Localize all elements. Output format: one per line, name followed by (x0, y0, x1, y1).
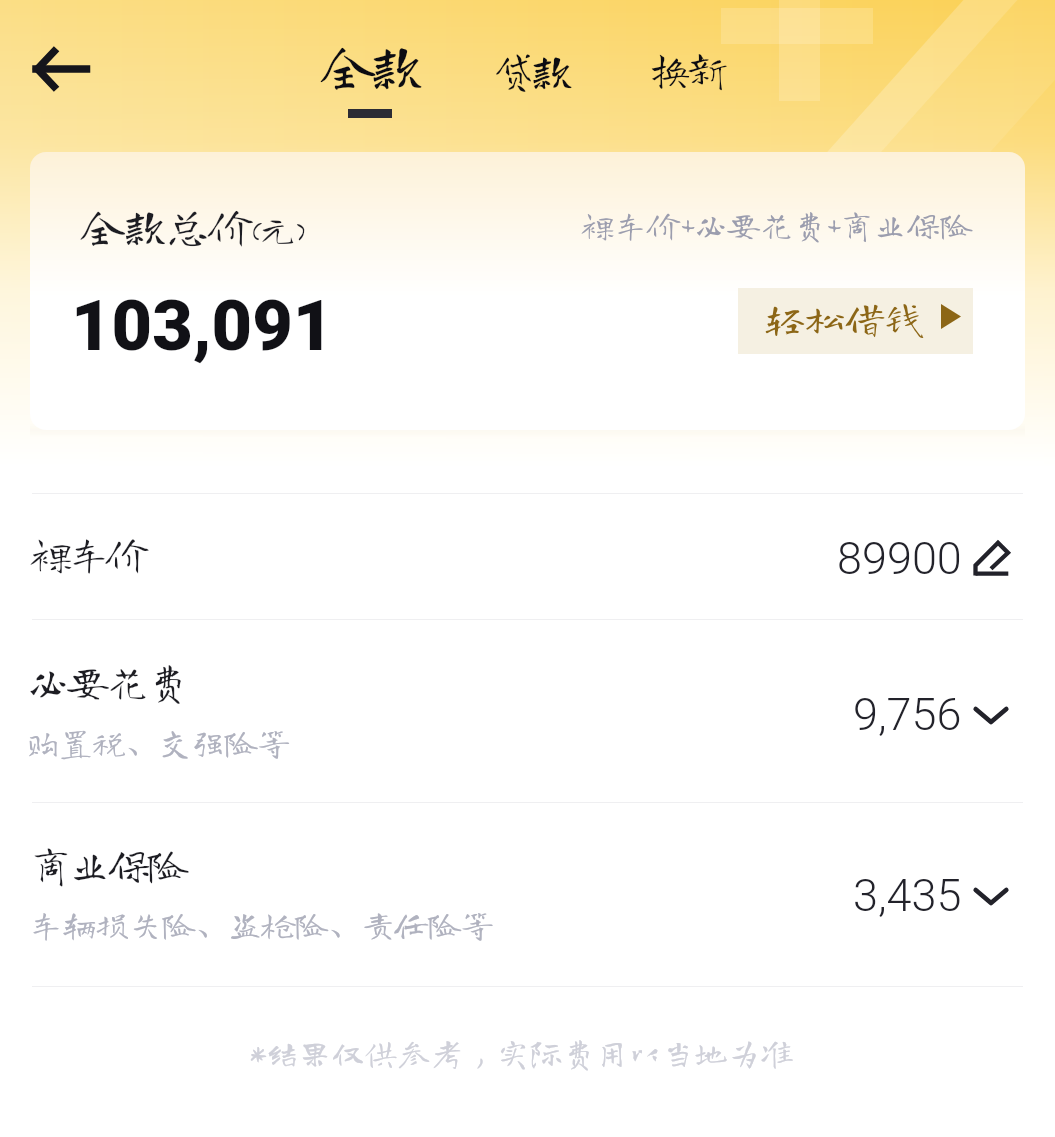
button[interactable]: 裸车价 (0, 493, 1055, 619)
staticText: *结果仅供参考，实际费用以当地为准 (249, 1036, 794, 1069)
staticText: 9,756 (853, 688, 962, 741)
button[interactable]: 商业保险 (0, 802, 1055, 986)
button[interactable]: 必要花费 (0, 619, 1055, 802)
button[interactable]: Expand (971, 695, 1011, 735)
staticText: 轻松借钱 (765, 298, 925, 338)
staticText: 商业保险 (30, 843, 187, 885)
staticText: 全款总价 (81, 203, 251, 247)
staticText: 全款 (321, 37, 420, 91)
staticText: 89900 (837, 532, 962, 585)
staticText: 裸车价 (30, 532, 145, 574)
button[interactable]: Back (16, 36, 106, 102)
staticText: (元) (251, 211, 305, 247)
staticText: 103,091 (71, 285, 334, 367)
staticText: 裸车价+必要花费+商业保险 (581, 208, 973, 241)
staticText: 购置税、交强险等 (26, 725, 290, 759)
button[interactable]: 贷款 (476, 48, 586, 118)
button[interactable]: Edit (971, 539, 1011, 579)
button[interactable]: 轻松借钱 (738, 288, 973, 354)
button[interactable]: 换新 (631, 47, 741, 117)
button[interactable]: Expand (971, 876, 1011, 916)
staticText: 贷款 (492, 48, 570, 91)
staticText: 车辆损失险、盗抢险、责任险等 (29, 907, 494, 941)
staticText: 换新 (649, 47, 723, 90)
staticText: 3,435 (853, 869, 962, 922)
staticText: 必要花费 (27, 660, 188, 702)
button[interactable]: 全款 (310, 37, 430, 137)
